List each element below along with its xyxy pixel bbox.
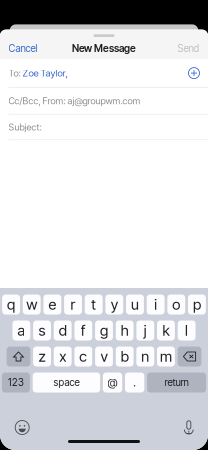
button[interactable]: w — [23, 294, 41, 314]
button[interactable]: Send — [169, 40, 208, 57]
button[interactable]: c — [74, 346, 92, 366]
button[interactable]: Shift — [7, 346, 30, 366]
button[interactable]: b — [116, 346, 134, 366]
button[interactable]: x — [54, 346, 72, 366]
staticText: v — [100, 348, 107, 365]
staticText: n — [141, 348, 149, 365]
staticText: x — [59, 348, 66, 365]
button[interactable]: @ — [103, 372, 122, 392]
button[interactable]: h — [116, 320, 134, 340]
staticText: w — [26, 296, 37, 313]
button[interactable]: Add recipient — [182, 68, 199, 79]
staticText: 123 — [8, 376, 24, 388]
button[interactable]: q — [2, 294, 20, 314]
staticText: Cancel — [8, 42, 37, 54]
button[interactable]: m — [157, 346, 175, 366]
button[interactable]: Delete — [178, 346, 201, 366]
button[interactable]: Emoji keyboard — [7, 415, 37, 439]
staticText: a — [17, 322, 25, 339]
staticText: Zoe Taylor, — [22, 67, 67, 79]
staticText: To: — [8, 67, 22, 79]
staticText: New Message — [72, 42, 136, 54]
staticText: c — [79, 348, 87, 365]
button[interactable]: k — [157, 320, 175, 340]
staticText: @ — [108, 376, 118, 389]
staticText: . — [133, 376, 136, 389]
staticText: p — [193, 296, 201, 313]
staticText: Send — [177, 42, 199, 54]
button[interactable]: r — [64, 294, 82, 314]
staticText: Cc/Bcc, From: aj@groupwm.com — [8, 95, 140, 106]
button[interactable]: e — [43, 294, 61, 314]
staticText: q — [7, 296, 15, 313]
staticText: t — [91, 296, 96, 313]
staticText: h — [121, 322, 129, 339]
button[interactable]: space — [33, 372, 100, 392]
staticText: Subject: — [8, 121, 41, 133]
button[interactable]: d — [54, 320, 72, 340]
button[interactable]: t — [85, 294, 103, 314]
button[interactable]: l — [178, 320, 196, 340]
button[interactable]: 123 — [2, 372, 30, 392]
button[interactable]: v — [95, 346, 113, 366]
button[interactable]: u — [126, 294, 144, 314]
staticText: b — [121, 348, 129, 365]
staticText: k — [162, 322, 169, 339]
button[interactable]: y — [105, 294, 123, 314]
staticText: u — [131, 296, 139, 313]
staticText: d — [59, 322, 67, 339]
staticText: m — [160, 348, 172, 365]
button[interactable]: z — [33, 346, 51, 366]
staticText: z — [39, 348, 46, 365]
button[interactable]: o — [167, 294, 185, 314]
staticText: e — [48, 296, 56, 313]
button[interactable]: p — [188, 294, 206, 314]
staticText: j — [144, 322, 147, 339]
staticText: y — [111, 296, 118, 313]
staticText: return — [165, 376, 189, 388]
staticText: r — [70, 296, 75, 313]
button[interactable]: Dictation — [174, 415, 204, 439]
button[interactable]: Cancel — [0, 40, 46, 57]
button[interactable]: . — [125, 372, 144, 392]
button[interactable]: s — [33, 320, 51, 340]
button[interactable]: j — [136, 320, 154, 340]
staticText: s — [39, 322, 46, 339]
button[interactable]: a — [12, 320, 30, 340]
button[interactable]: return — [147, 372, 206, 392]
staticText: f — [81, 322, 86, 339]
staticText: l — [185, 322, 188, 339]
button[interactable]: n — [136, 346, 154, 366]
staticText: o — [172, 296, 180, 313]
button[interactable]: i — [147, 294, 165, 314]
staticText: i — [154, 296, 157, 313]
button[interactable]: g — [95, 320, 113, 340]
staticText: space — [53, 376, 79, 388]
button[interactable]: f — [74, 320, 92, 340]
staticText: g — [100, 322, 108, 339]
